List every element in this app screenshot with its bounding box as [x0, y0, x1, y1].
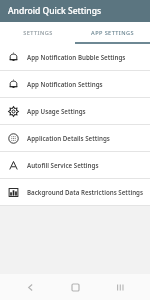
staticText: App Notification Settings [27, 80, 103, 88]
button[interactable]: Recents [105, 274, 135, 300]
button[interactable]: App Notification Settings [0, 71, 150, 97]
button[interactable]: Back [15, 274, 45, 300]
staticText: SETTINGS [23, 29, 53, 37]
button[interactable]: SETTINGS [0, 22, 75, 44]
staticText: Background Data Restrictions Settings [27, 188, 144, 196]
button[interactable]: App Usage Settings [0, 98, 150, 124]
staticText: Android Quick Settings [8, 5, 102, 17]
staticText: Autofill Service Settings [27, 161, 99, 169]
staticText: App Notification Bubble Settings [27, 53, 126, 61]
staticText: Application Details Settings [27, 134, 110, 142]
button[interactable]: Application Details Settings [0, 125, 150, 151]
staticText: APP SETTINGS [91, 29, 134, 37]
button[interactable]: APP SETTINGS [75, 22, 150, 44]
staticText: App Usage Settings [27, 107, 86, 115]
button[interactable]: Background Data Restrictions Settings [0, 179, 150, 205]
button[interactable]: Home [60, 274, 90, 300]
button[interactable]: App Notification Bubble Settings [0, 44, 150, 70]
button[interactable]: Autofill Service Settings [0, 152, 150, 178]
